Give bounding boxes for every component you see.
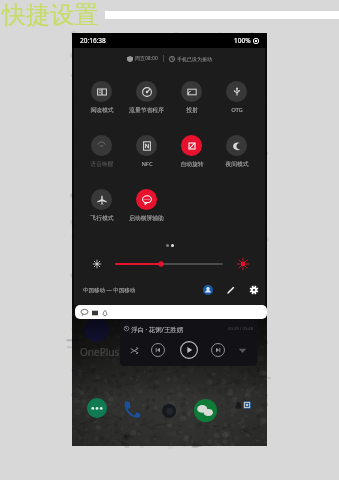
button[interactable]: Messages (87, 398, 107, 418)
button[interactable]: Previous (151, 343, 165, 357)
staticText: 流量节省程序 (129, 106, 164, 113)
button[interactable]: NFC (124, 135, 169, 167)
staticText: 浮白 · 花粥/王胜娚 (131, 325, 184, 334)
button[interactable]: WeChat (194, 399, 217, 422)
button[interactable]: Settings (249, 285, 259, 295)
button[interactable]: 语音唤醒 (79, 135, 124, 167)
staticText: NFC (141, 160, 153, 168)
button[interactable]: 流量节省程序 (124, 81, 169, 113)
button[interactable]: 浮白 · 花粥/王胜娚 (120, 320, 257, 366)
button[interactable]: 阅读模式 (79, 81, 124, 113)
button[interactable]: Edit (226, 285, 236, 295)
button[interactable] (75, 305, 267, 319)
button[interactable]: User (203, 285, 213, 295)
staticText: 中国移动 — 中国移动 (83, 286, 136, 294)
button[interactable]: OTG (214, 81, 259, 113)
button[interactable]: Camera (162, 404, 176, 418)
button[interactable]: Play (180, 341, 198, 359)
button[interactable]: QQ (235, 402, 242, 409)
button[interactable]: 启动横屏辅助 (124, 189, 169, 221)
button[interactable]: Collapse (238, 346, 247, 355)
staticText: 语音唤醒 (90, 160, 114, 167)
staticText: 20:16:38 (80, 36, 106, 45)
button[interactable]: App (243, 401, 251, 409)
button[interactable]: 自动旋转 (169, 135, 214, 167)
button[interactable]: Shuffle (130, 346, 139, 355)
staticText: 周五08:00 (135, 55, 158, 62)
staticText: 00:29 / 03:48 (228, 326, 254, 332)
staticText: 投射 (186, 106, 198, 113)
button[interactable]: Phone (121, 399, 141, 419)
staticText: 飞行模式 (90, 214, 114, 221)
staticText: 阅读模式 (90, 106, 114, 113)
button[interactable]: 投射 (169, 81, 214, 113)
staticText: OTG (231, 106, 243, 114)
staticText: 夜间模式 (225, 160, 249, 167)
staticText: 手机已设为振动 (177, 56, 212, 62)
staticText: OnePlus (80, 345, 120, 359)
button[interactable]: 夜间模式 (214, 135, 259, 167)
staticText: 启动横屏辅助 (129, 214, 164, 221)
staticText: 快捷设置 (2, 0, 98, 30)
staticText: 自动旋转 (180, 160, 204, 167)
button[interactable]: Next (211, 343, 225, 357)
staticText: 100% (234, 36, 251, 45)
button[interactable]: 飞行模式 (79, 189, 124, 221)
